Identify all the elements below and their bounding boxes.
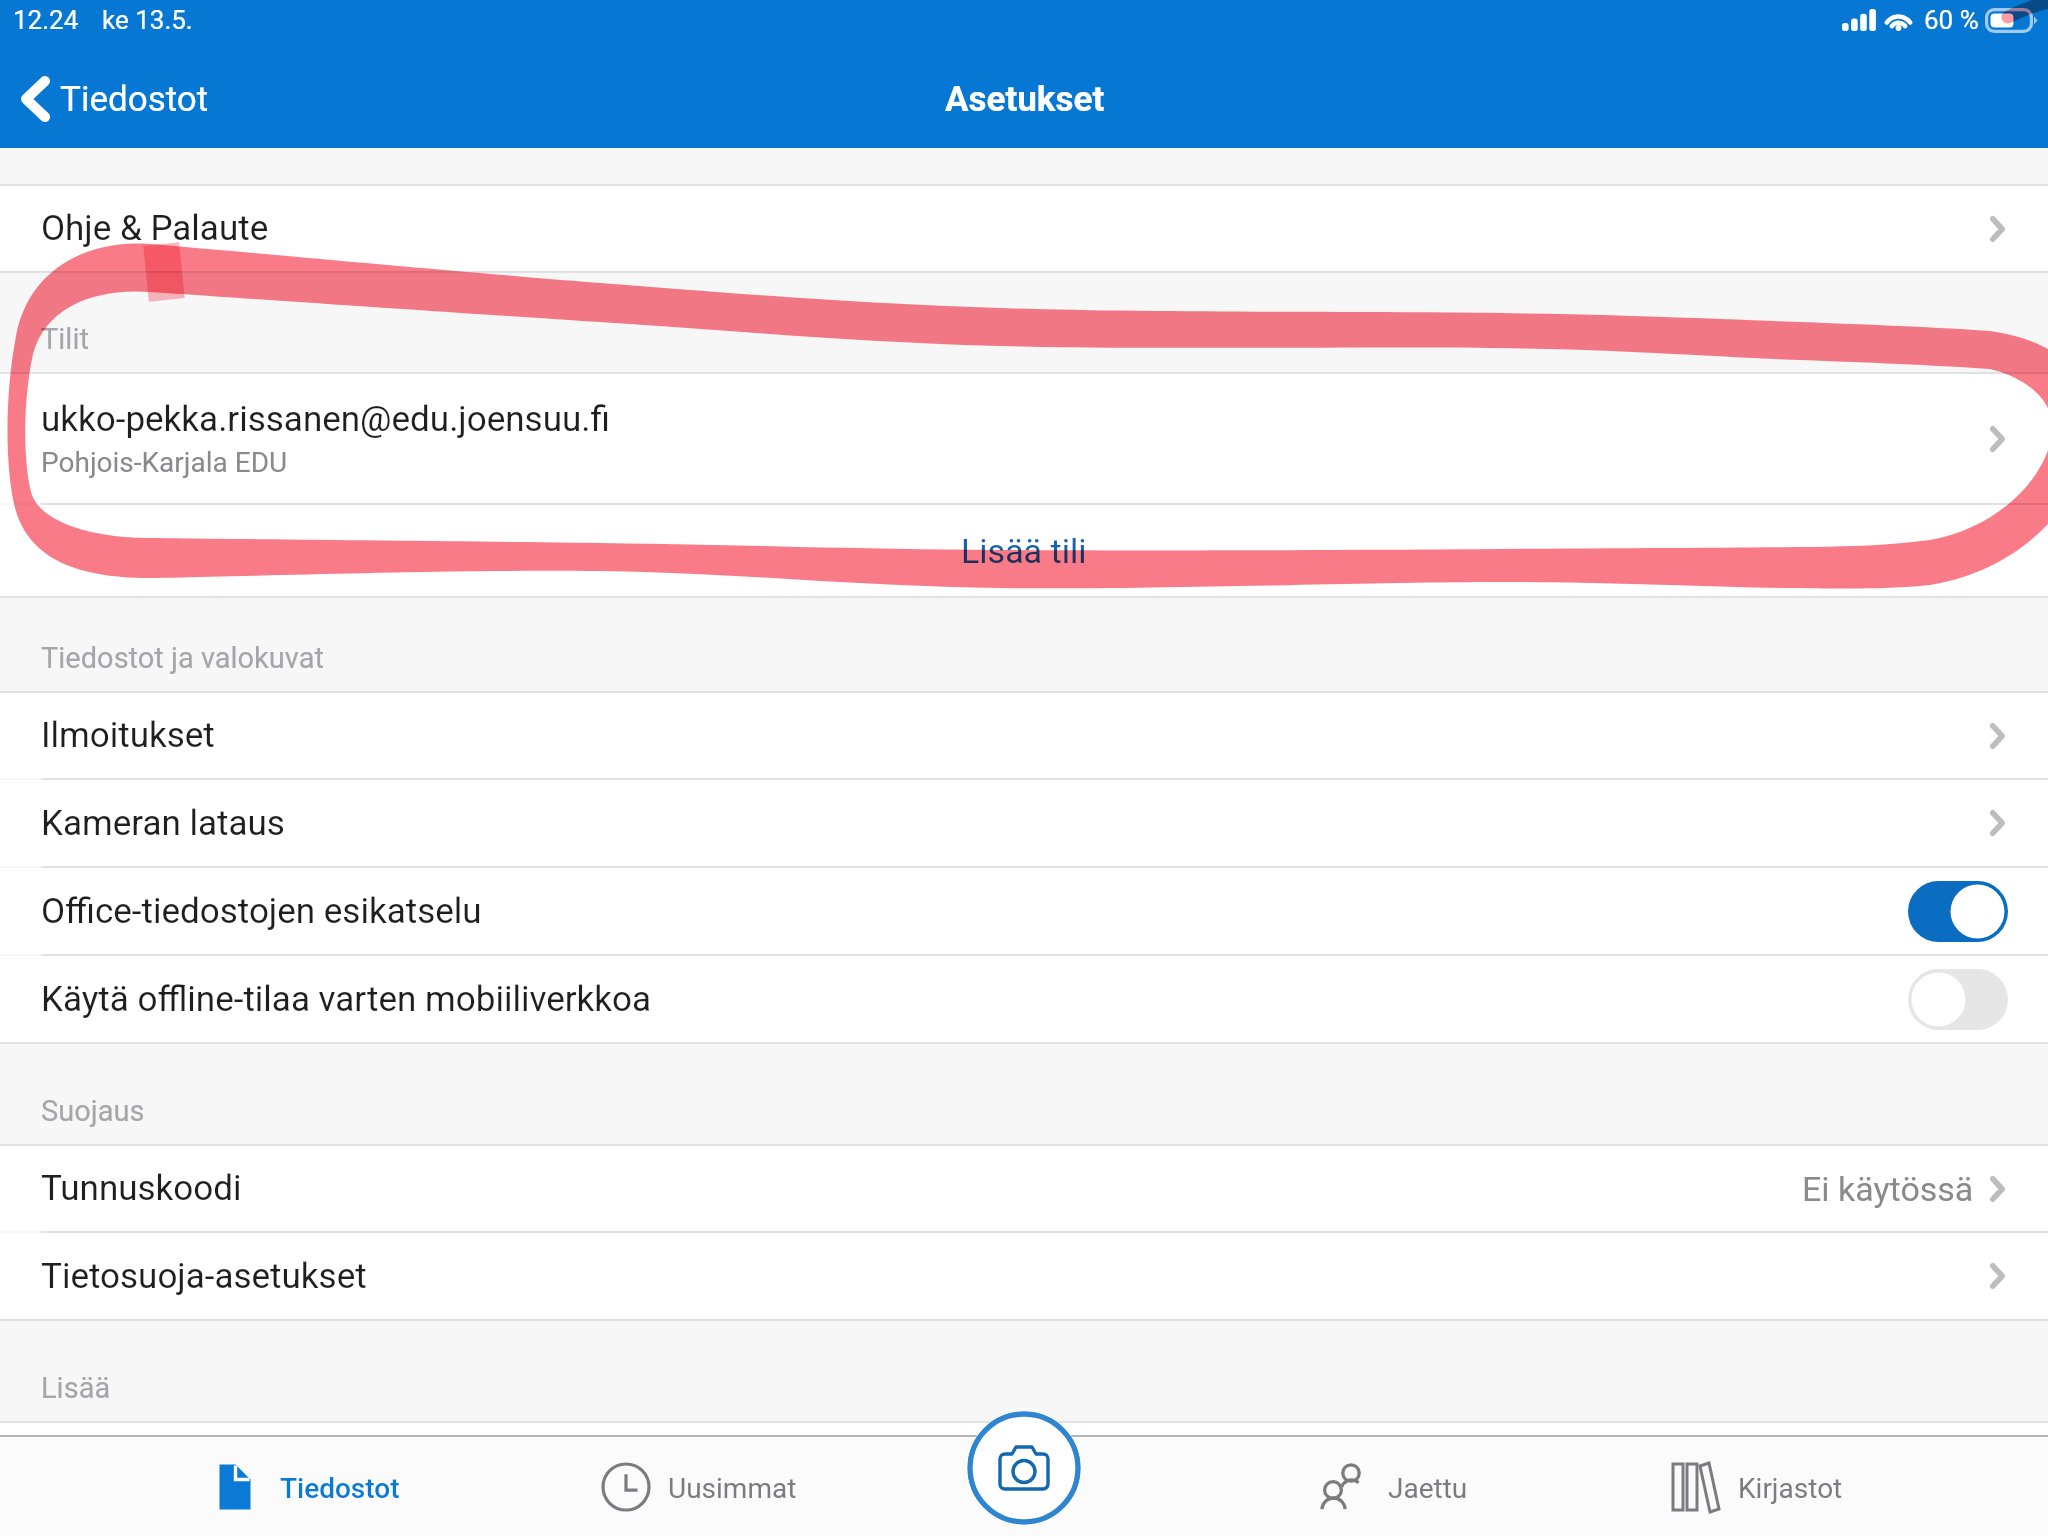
button[interactable]: Käytä offline-tilaa varten mobiiliverkko… — [0, 956, 2048, 1042]
staticText: Tunnuskoodi — [41, 1168, 242, 1209]
button[interactable]: Ohje & Palaute — [0, 186, 2048, 271]
staticText: Tiedostot ja valokuvat — [41, 641, 324, 675]
button[interactable]: Tunnuskoodi — [0, 1146, 2048, 1231]
button[interactable]: Lisää tili — [0, 505, 2048, 596]
staticText: Suojaus — [41, 1094, 145, 1128]
button[interactable]: Kirjastot — [1657, 1435, 1870, 1536]
staticText: Office-tiedostojen esikatselu — [41, 891, 482, 932]
staticText: Ei käytössä — [1802, 1169, 1974, 1209]
staticText: Asetukset — [945, 79, 1105, 120]
button[interactable]: Camera — [967, 1411, 1081, 1525]
button[interactable]: Uusimmat — [588, 1435, 800, 1536]
button[interactable]: Kameran lataus — [0, 780, 2048, 866]
staticText: ukko-pekka.rissanen@edu.joensuu.fi — [41, 399, 610, 440]
staticText: Tilit — [41, 322, 89, 356]
button[interactable]: Tiedostot — [197, 1435, 412, 1536]
staticText: Käytä offline-tilaa varten mobiiliverkko… — [41, 979, 652, 1020]
staticText: Jaettu — [1388, 1472, 1468, 1505]
staticText: Tiedostot — [280, 1472, 400, 1505]
button[interactable]: ukko-pekka.rissanen@edu.joensuu.fi — [0, 374, 2048, 503]
button[interactable]: Ilmoitukset — [0, 693, 2048, 778]
staticText: Kirjastot — [1738, 1472, 1843, 1505]
staticText: 60 % — [1924, 5, 1979, 35]
staticText: Lisää tili — [961, 531, 1087, 571]
button[interactable]: Jaettu — [1302, 1435, 1520, 1536]
button[interactable]: Back to Tiedostot — [0, 67, 225, 131]
staticText: Kameran lataus — [41, 803, 285, 844]
staticText: Ilmoitukset — [41, 715, 215, 756]
staticText: ke 13.5. — [102, 5, 193, 35]
staticText: Tiedostot — [60, 79, 209, 120]
staticText: Pohjois-Karjala EDU — [41, 446, 288, 479]
button[interactable]: Office-tiedostojen esikatselu — [0, 868, 2048, 954]
staticText: 12.24 — [13, 5, 79, 35]
staticText: Tietosuoja-asetukset — [41, 1256, 367, 1297]
staticText: Lisää — [41, 1371, 111, 1405]
button[interactable]: Tietosuoja-asetukset — [0, 1233, 2048, 1319]
staticText: Ohje & Palaute — [41, 208, 269, 249]
staticText: Uusimmat — [668, 1472, 797, 1505]
